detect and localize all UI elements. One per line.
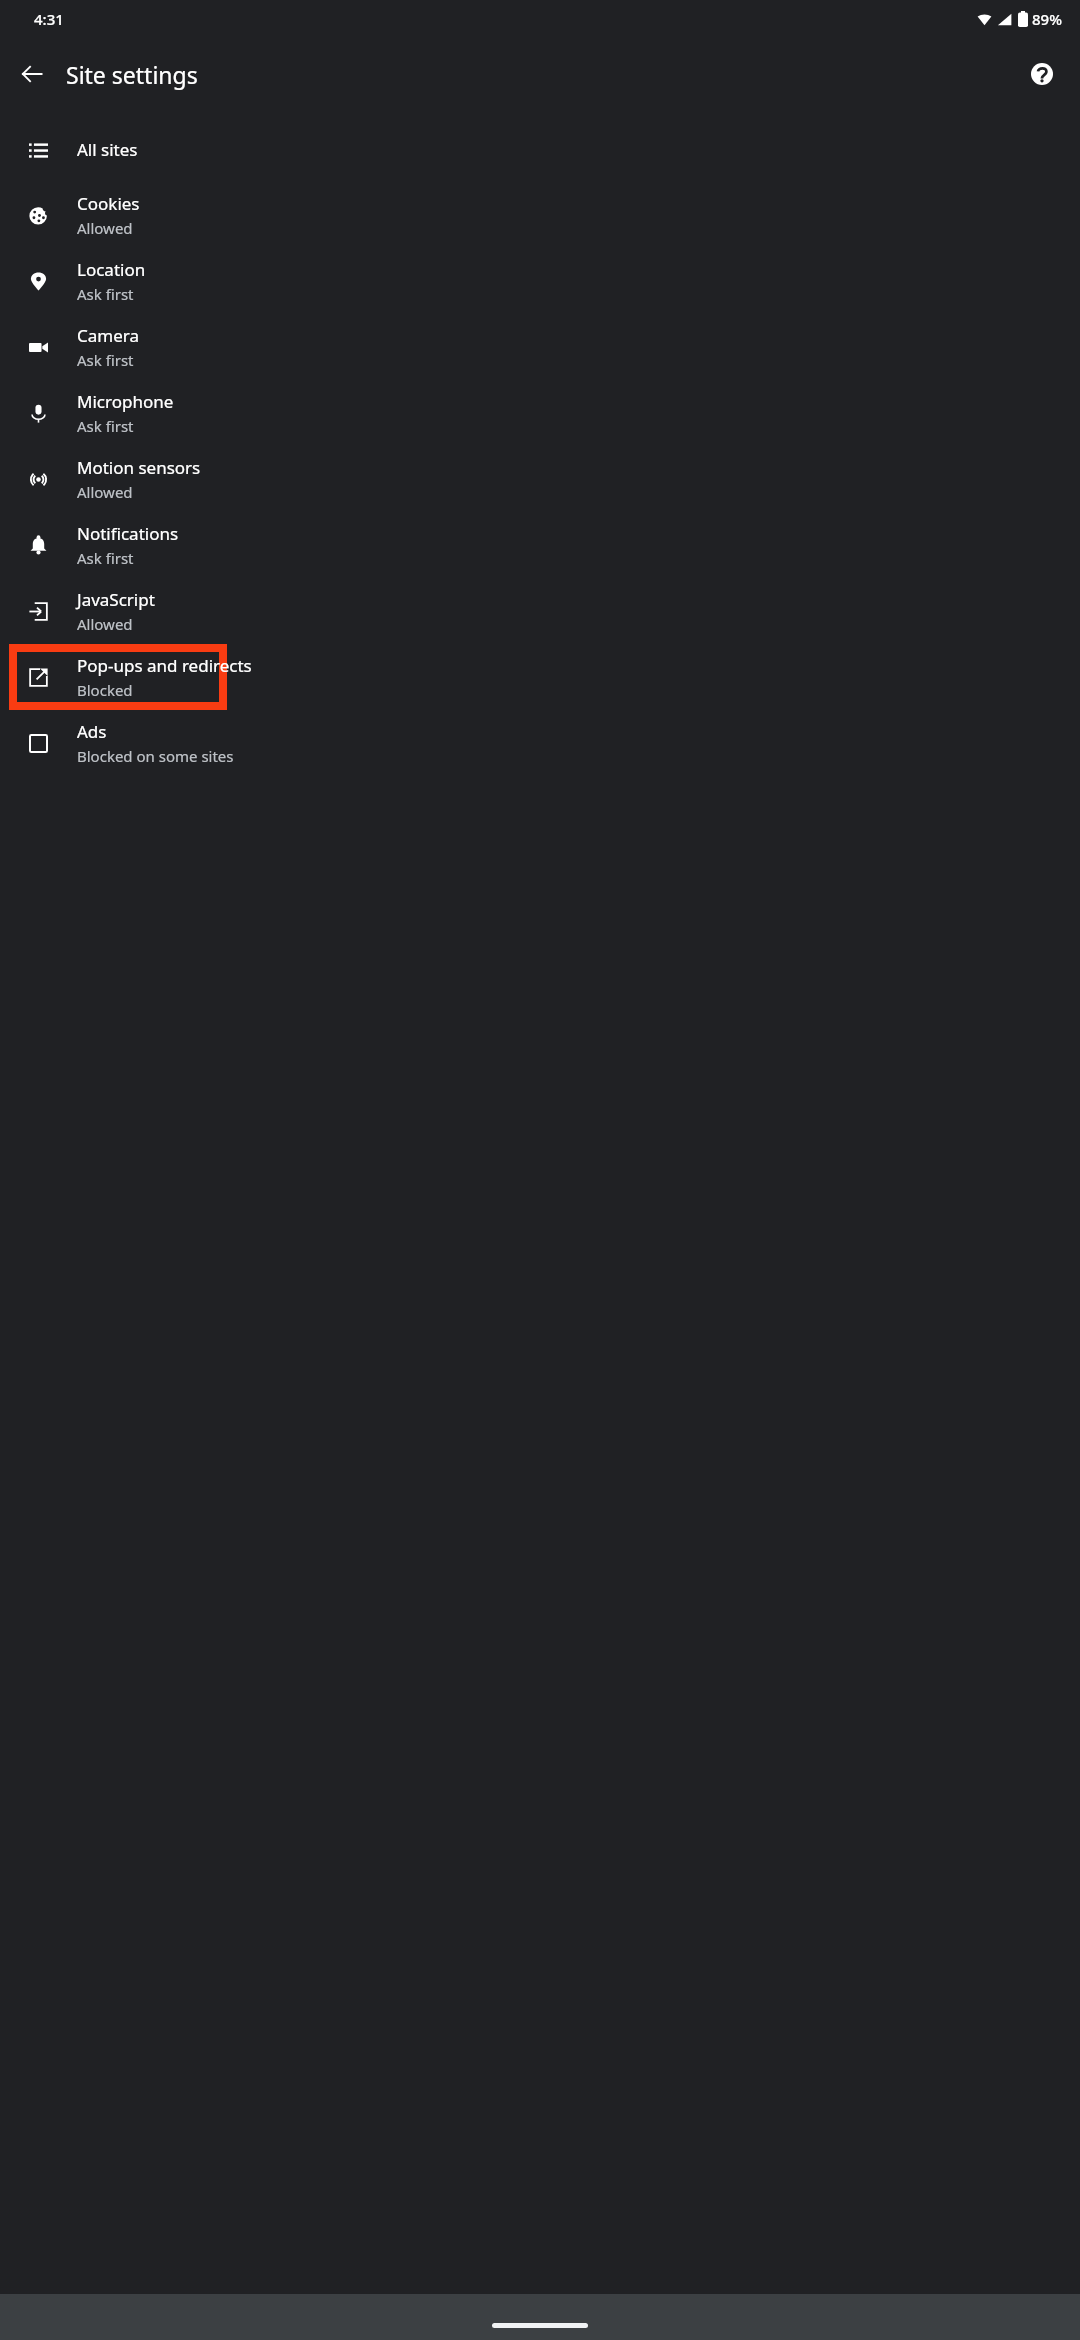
- staticText: JavaScript: [77, 588, 155, 611]
- button[interactable]: JavaScript: [0, 578, 1080, 644]
- button[interactable]: Help: [1018, 50, 1066, 98]
- staticText: Site settings: [66, 59, 198, 90]
- button[interactable]: Back: [8, 50, 56, 98]
- staticText: Ask first: [77, 548, 134, 568]
- staticText: Cookies: [77, 192, 140, 215]
- button[interactable]: Microphone: [0, 380, 1080, 446]
- button[interactable]: Notifications: [0, 512, 1080, 578]
- button[interactable]: Camera: [0, 314, 1080, 380]
- staticText: Camera: [77, 324, 139, 347]
- staticText: Motion sensors: [77, 456, 201, 479]
- staticText: Blocked on some sites: [77, 746, 234, 766]
- staticText: All sites: [77, 138, 138, 161]
- staticText: Microphone: [77, 390, 174, 413]
- button[interactable]: Ads: [0, 710, 1080, 776]
- staticText: Pop-ups and redirects: [77, 654, 252, 677]
- staticText: Allowed: [77, 218, 133, 238]
- staticText: Ask first: [77, 284, 134, 304]
- staticText: Blocked: [77, 680, 133, 700]
- staticText: Location: [77, 258, 146, 281]
- staticText: Notifications: [77, 522, 179, 545]
- button[interactable]: Pop-ups and redirects: [0, 644, 1080, 710]
- button[interactable]: Location: [0, 248, 1080, 314]
- staticText: Allowed: [77, 614, 133, 634]
- staticText: Ask first: [77, 350, 134, 370]
- button[interactable]: Cookies: [0, 182, 1080, 248]
- staticText: Allowed: [77, 482, 133, 502]
- staticText: Ask first: [77, 416, 134, 436]
- staticText: 89%: [1032, 9, 1062, 29]
- staticText: Ads: [77, 720, 107, 743]
- staticText: 4:31: [34, 9, 64, 29]
- button[interactable]: All sites: [0, 116, 1080, 182]
- button[interactable]: Motion sensors: [0, 446, 1080, 512]
